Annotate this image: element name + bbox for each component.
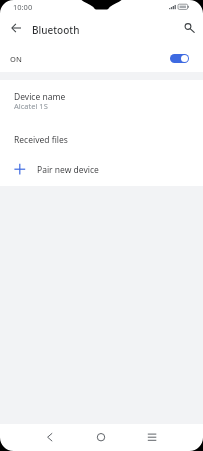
- staticText: Bluetooth: [32, 23, 80, 37]
- button[interactable]: Navigate up: [4, 16, 28, 40]
- staticText: ON: [10, 54, 22, 64]
- button[interactable]: Bluetooth on: [170, 54, 189, 63]
- staticText: Received files: [14, 134, 68, 146]
- button[interactable]: Received files: [0, 124, 203, 157]
- button[interactable]: Search: [176, 16, 200, 40]
- staticText: Alcatel 1S: [14, 101, 48, 111]
- staticText: 10:00: [13, 2, 33, 12]
- button[interactable]: Recent apps: [138, 424, 166, 451]
- button[interactable]: Back: [36, 424, 64, 451]
- button[interactable]: Pair new device: [0, 157, 203, 186]
- staticText: Device name: [14, 91, 66, 103]
- staticText: Pair new device: [37, 164, 99, 176]
- button[interactable]: Home: [87, 424, 115, 451]
- button[interactable]: ON: [0, 42, 203, 72]
- button[interactable]: Device name: [0, 80, 203, 124]
